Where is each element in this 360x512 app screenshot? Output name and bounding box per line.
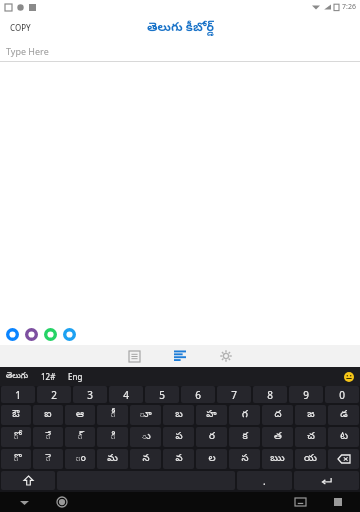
button[interactable]: Messenger xyxy=(5,327,20,342)
button[interactable]: Settings xyxy=(217,347,235,365)
staticText: 1 xyxy=(15,388,21,402)
button[interactable]: Enter xyxy=(294,471,359,490)
button[interactable]: Clipboard xyxy=(125,347,143,365)
button[interactable]: Home xyxy=(54,494,70,510)
button[interactable]: 0 xyxy=(325,386,359,403)
staticText: ఔ xyxy=(12,408,20,422)
button[interactable]: మ xyxy=(97,449,128,469)
button[interactable]: ఔ xyxy=(1,405,31,425)
staticText: 5 xyxy=(159,388,165,402)
button[interactable]: ి xyxy=(97,427,128,447)
staticText: డ xyxy=(340,408,348,422)
staticText: గ xyxy=(242,408,248,422)
button[interactable]: వ xyxy=(163,449,194,469)
staticText: 2 xyxy=(51,388,57,402)
button[interactable]: Shift xyxy=(1,471,55,490)
button[interactable]: 6 xyxy=(181,386,215,403)
button[interactable]: Back xyxy=(16,494,32,510)
button[interactable]: ీ xyxy=(97,405,128,425)
button[interactable]: ద xyxy=(262,405,293,425)
staticText: ే xyxy=(45,430,51,444)
staticText: 9 xyxy=(303,388,309,402)
staticText: ి xyxy=(110,430,116,444)
staticText: జ xyxy=(307,408,315,422)
staticText: వ xyxy=(175,452,183,466)
staticText: 8 xyxy=(267,388,273,402)
button[interactable]: న xyxy=(130,449,161,469)
staticText: మ xyxy=(107,452,118,466)
staticText: తెలుగు xyxy=(6,371,29,382)
button[interactable]: త xyxy=(262,427,293,447)
staticText: ొ xyxy=(13,452,19,466)
button[interactable]: ు xyxy=(130,427,161,447)
button[interactable]: ట xyxy=(328,427,359,447)
button[interactable]: ర xyxy=(196,427,227,447)
staticText: య xyxy=(304,452,317,466)
button[interactable]: ో xyxy=(1,427,31,447)
button[interactable]: Eng xyxy=(62,369,89,384)
button[interactable]: Emoji xyxy=(343,371,354,382)
staticText: Eng xyxy=(68,371,83,382)
button[interactable]: ఋ xyxy=(262,449,293,469)
button[interactable]: Switch keyboard xyxy=(292,494,308,510)
button[interactable]: Recents xyxy=(330,494,346,510)
button[interactable]: COPY xyxy=(0,18,41,37)
button[interactable]: తెలుగు xyxy=(0,369,35,384)
button[interactable]: Backspace xyxy=(328,449,359,469)
button[interactable]: . xyxy=(237,471,292,490)
staticText: ట xyxy=(340,430,348,444)
button[interactable]: ే xyxy=(33,427,63,447)
button[interactable]: జ xyxy=(295,405,326,425)
button[interactable]: క xyxy=(229,427,260,447)
button[interactable]: ఐ xyxy=(33,405,63,425)
button[interactable]: WhatsApp xyxy=(43,327,58,342)
button[interactable]: బ xyxy=(163,405,194,425)
staticText: 3 xyxy=(87,388,93,402)
button[interactable]: 5 xyxy=(145,386,179,403)
button[interactable]: ఆ xyxy=(65,405,95,425)
button[interactable]: ప xyxy=(163,427,194,447)
staticText: ప xyxy=(175,430,183,444)
staticText: ఋ xyxy=(270,452,285,466)
staticText: ె xyxy=(45,452,51,466)
staticText: . xyxy=(263,474,266,488)
button[interactable]: Twitter xyxy=(62,327,77,342)
button[interactable]: 7 xyxy=(217,386,251,403)
button[interactable]: డ xyxy=(328,405,359,425)
button[interactable]: 8 xyxy=(253,386,287,403)
staticText: తెలుగు కీబోర్డ్ xyxy=(147,18,214,37)
button[interactable]: Viber xyxy=(24,327,39,342)
staticText: COPY xyxy=(10,22,31,33)
button[interactable]: చ xyxy=(295,427,326,447)
button[interactable]: గ xyxy=(229,405,260,425)
button[interactable]: 9 xyxy=(289,386,323,403)
button[interactable]: హ xyxy=(196,405,227,425)
staticText: ూ xyxy=(139,408,152,422)
staticText: ర xyxy=(209,430,215,444)
staticText: 0 xyxy=(339,388,345,402)
staticText: ్ xyxy=(77,430,83,444)
button[interactable]: ం xyxy=(65,449,95,469)
staticText: ల xyxy=(208,452,216,466)
staticText: ం xyxy=(75,452,86,466)
button[interactable]: Text list xyxy=(171,347,189,365)
button[interactable]: ్ xyxy=(65,427,95,447)
staticText: ఐ xyxy=(44,408,52,422)
staticText: ఆ xyxy=(76,408,84,422)
button[interactable]: స xyxy=(229,449,260,469)
button[interactable]: 1 xyxy=(1,386,35,403)
staticText: 4 xyxy=(123,388,129,402)
button[interactable]: 12# xyxy=(35,369,62,384)
button[interactable]: ూ xyxy=(130,405,161,425)
button[interactable]: ొ xyxy=(1,449,31,469)
button[interactable]: ె xyxy=(33,449,63,469)
staticText: 6 xyxy=(195,388,201,402)
staticText: 7 xyxy=(231,388,237,402)
staticText: 7:26 xyxy=(342,2,356,12)
button[interactable]: 4 xyxy=(109,386,143,403)
button[interactable]: 3 xyxy=(73,386,107,403)
button[interactable]: ల xyxy=(196,449,227,469)
button[interactable]: 2 xyxy=(37,386,71,403)
button[interactable]: య xyxy=(295,449,326,469)
